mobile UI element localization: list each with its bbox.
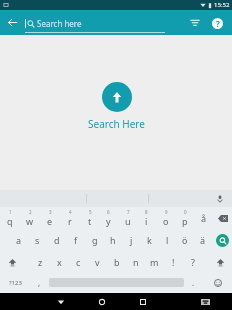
button[interactable]: j	[122, 229, 140, 251]
staticText: ä	[200, 234, 206, 246]
staticText: 0	[184, 209, 187, 215]
staticText: q	[7, 215, 13, 227]
button[interactable]: !	[164, 251, 183, 273]
button[interactable]: Filter	[184, 12, 206, 34]
button[interactable]: 3	[40, 207, 60, 229]
staticText: 3	[49, 209, 52, 215]
staticText: 4	[69, 209, 72, 215]
staticText: Search Here	[88, 117, 145, 131]
staticText: .	[192, 277, 195, 288]
button[interactable]: Search	[212, 229, 232, 251]
staticText: v	[95, 256, 100, 268]
staticText: 15:52	[214, 1, 230, 9]
button[interactable]: ,	[30, 273, 49, 292]
button[interactable]: h	[104, 229, 122, 251]
button[interactable]: Shift	[209, 251, 232, 273]
button[interactable]: 7	[118, 207, 137, 229]
staticText: 8	[145, 209, 148, 215]
button[interactable]: Backspace	[213, 207, 232, 229]
button[interactable]: 8	[137, 207, 156, 229]
staticText: 9	[165, 209, 168, 215]
button[interactable]: n	[126, 251, 145, 273]
staticText: g	[92, 234, 98, 246]
staticText: k	[147, 234, 152, 246]
staticText: 7	[127, 209, 130, 215]
button[interactable]: v	[88, 251, 107, 273]
staticText: Search here	[37, 18, 82, 29]
staticText: f	[74, 234, 78, 246]
staticText: !	[172, 256, 175, 268]
button[interactable]: Search Here	[102, 82, 132, 112]
button[interactable]: 2	[20, 207, 40, 229]
staticText: d	[54, 234, 60, 246]
button[interactable]: 4	[60, 207, 80, 229]
button[interactable]: .	[184, 273, 203, 292]
button[interactable]: a	[9, 229, 28, 251]
button[interactable]: m	[145, 251, 164, 273]
staticText: å	[201, 212, 207, 224]
staticText: x	[57, 256, 62, 268]
staticText: h	[110, 234, 116, 246]
button[interactable]: 5	[80, 207, 99, 229]
button[interactable]: Recent apps	[122, 293, 163, 310]
staticText: z	[38, 256, 43, 268]
button[interactable]: Back	[0, 10, 25, 35]
staticText: i	[145, 215, 148, 227]
button[interactable]: 9	[156, 207, 175, 229]
staticText: a	[16, 234, 22, 246]
staticText: 1	[9, 209, 12, 215]
button[interactable]: l	[158, 229, 176, 251]
staticText: o	[163, 215, 169, 227]
button[interactable]: g	[85, 229, 104, 251]
staticText: ,	[38, 277, 41, 288]
staticText: ?123	[9, 279, 22, 287]
staticText: r	[68, 215, 72, 227]
staticText: y	[106, 215, 111, 227]
button[interactable]: f	[66, 229, 85, 251]
staticText: 6	[107, 209, 110, 215]
button[interactable]: Shift	[0, 251, 24, 273]
button[interactable]: 6	[99, 207, 118, 229]
staticText: 5	[89, 209, 92, 215]
staticText: m	[150, 256, 159, 268]
staticText: n	[133, 256, 139, 268]
button[interactable]: d	[47, 229, 66, 251]
button[interactable]: Search here	[25, 10, 176, 35]
button[interactable]: å	[194, 207, 213, 229]
button[interactable]: Home	[81, 293, 122, 310]
staticText: ?	[191, 256, 195, 268]
button[interactable]: b	[107, 251, 126, 273]
button[interactable]: x	[50, 251, 69, 273]
button[interactable]: Voice input	[214, 193, 226, 205]
staticText: e	[47, 215, 53, 227]
button[interactable]: Back	[40, 293, 81, 310]
staticText: ?	[216, 18, 220, 29]
button[interactable]: Switch keyboard	[187, 293, 224, 310]
staticText: ö	[182, 234, 188, 246]
button[interactable]: 1	[0, 207, 20, 229]
button[interactable]: c	[69, 251, 88, 273]
button[interactable]: ä	[194, 229, 212, 251]
staticText: p	[182, 215, 188, 227]
button[interactable]: ?123	[0, 273, 30, 292]
button[interactable]: ?	[183, 251, 202, 273]
button[interactable]: s	[28, 229, 47, 251]
staticText: u	[125, 215, 131, 227]
button[interactable]: k	[140, 229, 158, 251]
staticText: j	[130, 234, 133, 246]
button[interactable]: Help	[206, 12, 228, 34]
button[interactable]: Emoji	[203, 273, 232, 292]
button[interactable]: z	[31, 251, 50, 273]
staticText: s	[35, 234, 40, 246]
staticText: b	[114, 256, 120, 268]
staticText: w	[26, 215, 34, 227]
staticText: c	[76, 256, 81, 268]
button[interactable]: 0	[175, 207, 194, 229]
staticText: l	[166, 234, 169, 246]
button[interactable]: ö	[176, 229, 194, 251]
staticText: t	[88, 215, 92, 227]
staticText: 2	[29, 209, 32, 215]
